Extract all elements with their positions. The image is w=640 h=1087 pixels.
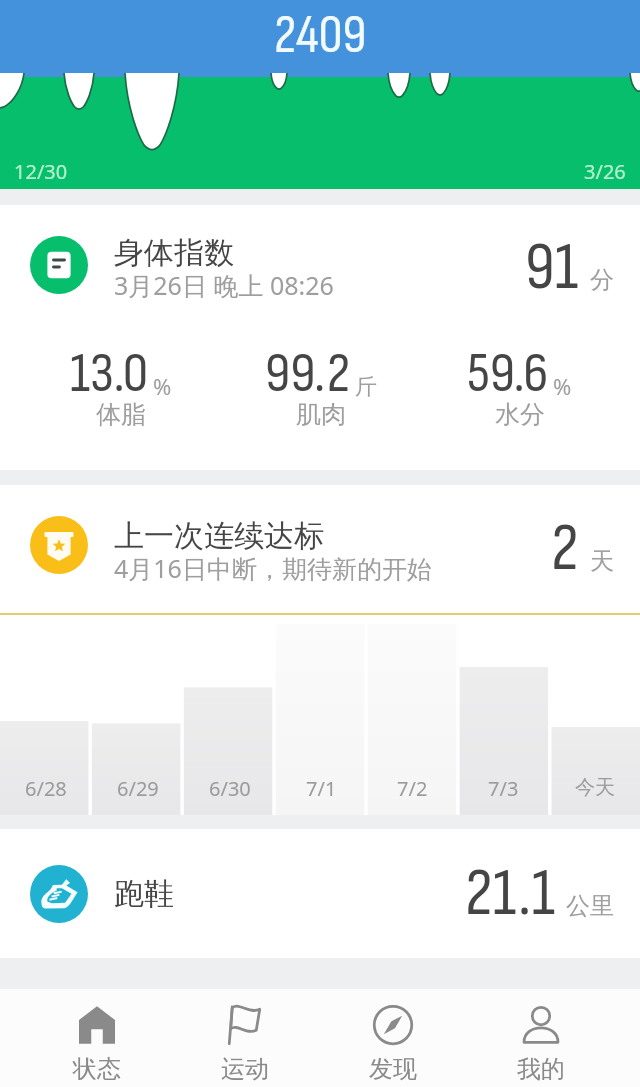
staticText: % [153,371,172,401]
staticText: 今天 [575,775,615,800]
staticText: 分 [590,265,614,295]
staticText: 4月16日中断，期待新的开始 [114,551,432,585]
staticText: 肌肉 [296,399,346,430]
staticText: 公里 [566,891,614,921]
button[interactable]: Status [23,989,171,1087]
staticText: 7/1 [306,775,337,802]
staticText: 6/29 [117,775,159,802]
staticText: 天 [590,546,614,576]
staticText: 91 [525,228,579,308]
other: Profile [516,1000,566,1050]
staticText: 2409 [274,3,367,68]
staticText: 2 [551,509,579,589]
button[interactable]: Discover [319,989,467,1087]
button[interactable]: 身体指数 [0,205,640,470]
staticText: 13.0 [70,340,149,408]
staticText: 7/3 [488,775,519,802]
staticText: 状态 [73,1054,121,1084]
staticText: 发现 [369,1054,417,1084]
other: Workout [220,1000,270,1050]
other: Status [72,1000,122,1050]
button[interactable]: 跑鞋 [0,829,640,958]
staticText: 99.2 [265,340,351,408]
staticText: 21.1 [465,854,555,934]
staticText: 跑鞋 [114,875,465,913]
staticText: 59.6 [467,340,549,408]
staticText: 我的 [517,1054,565,1084]
staticText: % [553,371,572,401]
staticText: 7/2 [397,775,428,802]
button[interactable]: Workout [171,989,319,1087]
button[interactable]: Profile [467,989,615,1087]
staticText: 身体指数 [114,234,234,272]
staticText: 3月26日 晚上 08:26 [114,268,334,302]
other: Discover [368,1000,418,1050]
staticText: 6/28 [25,775,67,802]
staticText: 6/30 [209,775,251,802]
staticText: 12/30 [14,158,68,185]
staticText: 运动 [221,1054,269,1084]
staticText: 3/26 [584,158,626,185]
staticText: 上一次连续达标 [114,517,324,555]
staticText: 体脂 [96,399,146,430]
staticText: 斤 [355,373,377,401]
staticText: 水分 [495,399,545,430]
button[interactable]: 上一次连续达标 [0,485,640,815]
